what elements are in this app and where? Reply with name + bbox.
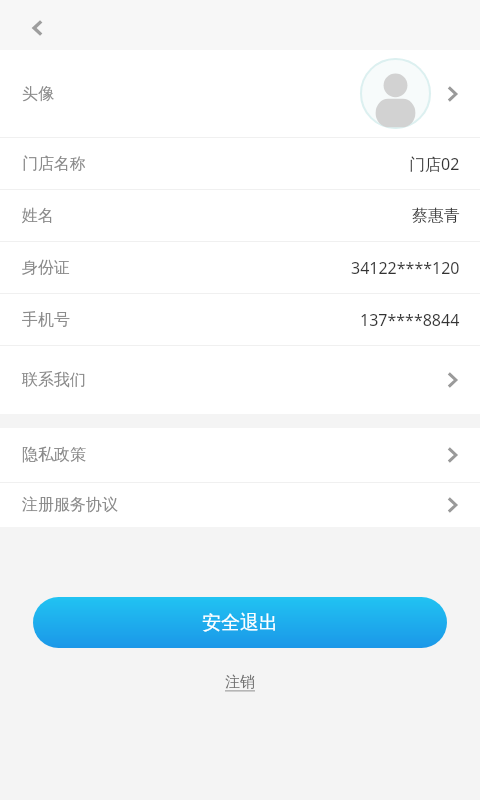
staticText: 姓名 [22, 206, 54, 226]
staticText: 注册服务协议 [22, 495, 118, 515]
button[interactable]: Back [22, 12, 54, 44]
staticText: 34122****120 [351, 257, 460, 279]
button[interactable]: 安全退出 [33, 597, 447, 648]
button[interactable]: 隐私政策 [0, 428, 480, 482]
button[interactable]: 门店名称 [0, 138, 480, 189]
staticText: 身份证 [22, 258, 70, 278]
staticText: 137****8844 [360, 309, 460, 331]
staticText: 注销 [225, 673, 255, 692]
staticText: 联系我们 [22, 370, 86, 390]
button[interactable]: 手机号 [0, 294, 480, 345]
staticText: 门店02 [409, 153, 460, 175]
staticText: 安全退出 [202, 611, 278, 635]
staticText: 头像 [22, 84, 54, 104]
staticText: 隐私政策 [22, 445, 86, 465]
button[interactable]: 姓名 [0, 190, 480, 241]
button[interactable]: 注册服务协议 [0, 483, 480, 527]
staticText: 门店名称 [22, 154, 86, 174]
button[interactable]: 注销 [215, 669, 265, 696]
staticText: 蔡惠青 [412, 206, 460, 226]
button[interactable]: 身份证 [0, 242, 480, 293]
button[interactable]: 联系我们 [0, 346, 480, 414]
staticText: 手机号 [22, 310, 70, 330]
button[interactable]: 头像 [0, 50, 480, 137]
